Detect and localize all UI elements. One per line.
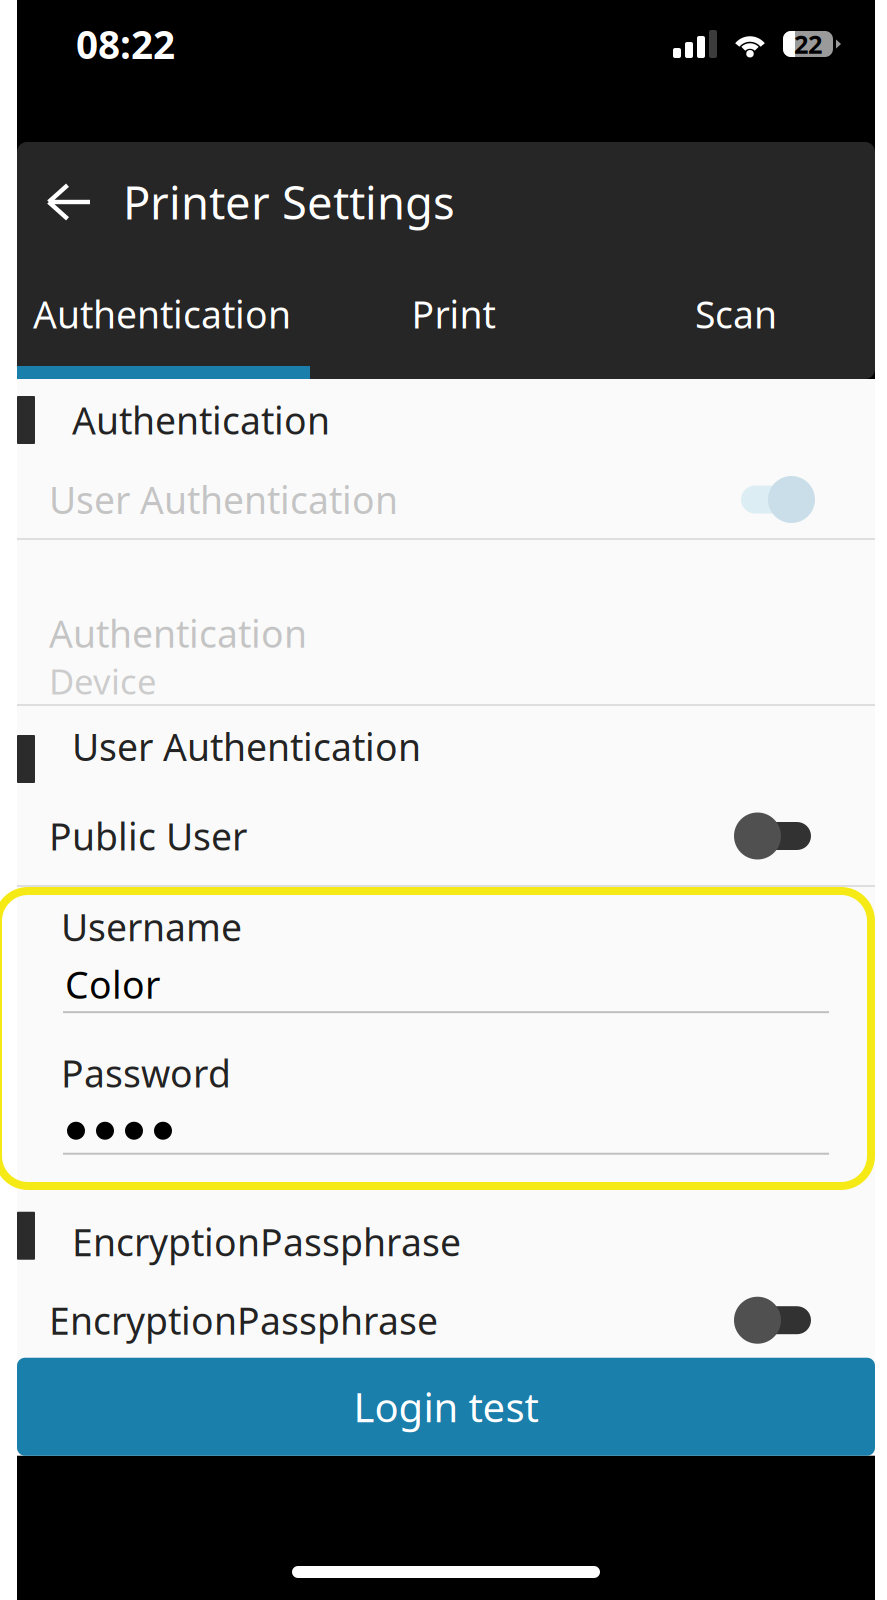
staticText: User Authentication [49, 475, 398, 524]
button[interactable]: Username [17, 887, 875, 1013]
staticText: Scan [695, 289, 777, 339]
button[interactable]: User Authentication [17, 461, 875, 538]
staticText: User Authentication [72, 722, 421, 771]
button[interactable]: Public User [17, 787, 875, 885]
staticText: Password [61, 1048, 231, 1098]
staticText: Authentication [49, 608, 307, 658]
button[interactable]: Authentication [17, 262, 310, 366]
staticText: Public User [49, 811, 247, 861]
button[interactable]: Scan [597, 262, 875, 366]
staticText: 08:22 [76, 18, 175, 70]
staticText: Authentication [72, 395, 330, 445]
staticText: Device [49, 658, 157, 704]
staticText: Print [411, 289, 495, 339]
staticText: Authentication [33, 289, 291, 339]
button[interactable]: Login test [17, 1358, 875, 1456]
staticText: EncryptionPassphrase [49, 1295, 438, 1345]
button[interactable]: EncryptionPassphrase [17, 1283, 875, 1358]
button[interactable]: Password [17, 1013, 875, 1155]
staticText: 22 [794, 27, 822, 61]
staticText: Color [65, 960, 160, 1009]
staticText: Username [61, 902, 242, 952]
staticText: Login test [353, 1380, 538, 1433]
staticText: Printer Settings [123, 172, 455, 232]
staticText: EncryptionPassphrase [72, 1217, 461, 1266]
button[interactable]: Print [310, 262, 597, 366]
button[interactable]: Back [31, 164, 107, 240]
